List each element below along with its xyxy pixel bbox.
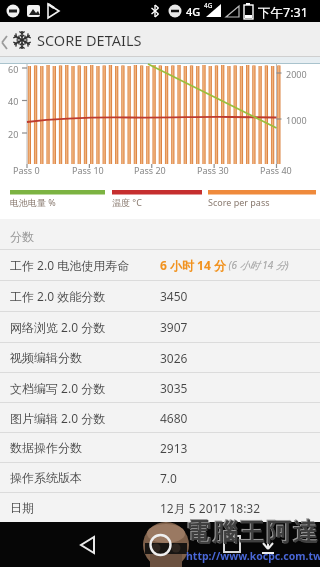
- button[interactable]: 视频编辑分数: [0, 342, 320, 372]
- staticText: 3026: [160, 350, 188, 366]
- button[interactable]: 网络浏览 2.0 分数: [0, 311, 320, 342]
- staticText: 操作系统版本: [10, 470, 82, 485]
- button[interactable]: 文档编写 2.0 分数: [0, 372, 320, 402]
- staticText: Pass 20: [134, 164, 166, 176]
- button[interactable]: [58, 522, 118, 567]
- staticText: 分数: [10, 229, 34, 244]
- staticText: 7.0: [160, 470, 177, 486]
- button[interactable]: [130, 522, 190, 567]
- staticText: 60: [8, 63, 19, 75]
- staticText: 40: [8, 95, 19, 107]
- button[interactable]: 工作 2.0 效能分数: [0, 280, 320, 311]
- staticText: 12月 5 2017 18:32: [160, 500, 261, 516]
- staticText: 文档编写 2.0 分数: [10, 380, 106, 396]
- button[interactable]: 数据操作分数: [0, 432, 320, 462]
- staticText: Pass 30: [197, 164, 229, 176]
- staticText: 4G: [186, 4, 201, 19]
- staticText: 2000: [286, 68, 307, 80]
- staticText: 图片编辑 2.0 分数: [10, 410, 106, 426]
- staticText: 3907: [160, 319, 188, 335]
- staticText: 4G: [204, 1, 213, 10]
- staticText: 工作 2.0 效能分数: [10, 288, 106, 304]
- staticText: SCORE DETAILS: [37, 30, 142, 50]
- button[interactable]: 日期: [0, 492, 320, 522]
- staticText: 電腦王阿達: [185, 517, 319, 548]
- staticText: Pass 40: [260, 164, 292, 176]
- staticText: 3450: [160, 288, 188, 304]
- staticText: 電腦王阿達: [184, 516, 318, 547]
- staticText: 3035: [160, 380, 188, 396]
- staticText: (6 小时 14 分): [226, 258, 289, 272]
- button[interactable]: 操作系统版本: [0, 462, 320, 492]
- staticText: Pass 0: [13, 164, 40, 176]
- staticText: 4680: [160, 410, 188, 426]
- staticText: 2913: [160, 440, 188, 456]
- staticText: Score per pass: [208, 196, 270, 208]
- button[interactable]: http://www.kocpc.com.tw: [186, 549, 320, 563]
- button[interactable]: 图片编辑 2.0 分数: [0, 402, 320, 432]
- staticText: 网络浏览 2.0 分数: [10, 319, 106, 335]
- staticText: Pass 10: [72, 164, 104, 176]
- staticText: 数据操作分数: [10, 440, 82, 455]
- staticText: 温度 °C: [112, 196, 142, 208]
- staticText: 视频编辑分数: [10, 350, 82, 365]
- staticText: 电池电量 %: [10, 196, 56, 208]
- staticText: 1000: [286, 114, 307, 126]
- button[interactable]: 工作 2.0 电池使用寿命: [0, 249, 320, 280]
- staticText: 6 小时 14 分: [160, 257, 226, 273]
- staticText: 20: [8, 128, 19, 140]
- staticText: 下午7:31: [258, 4, 308, 21]
- button[interactable]: SCORE DETAILS: [0, 22, 320, 57]
- staticText: 工作 2.0 电池使用寿命: [10, 257, 130, 273]
- staticText: 日期: [10, 500, 34, 515]
